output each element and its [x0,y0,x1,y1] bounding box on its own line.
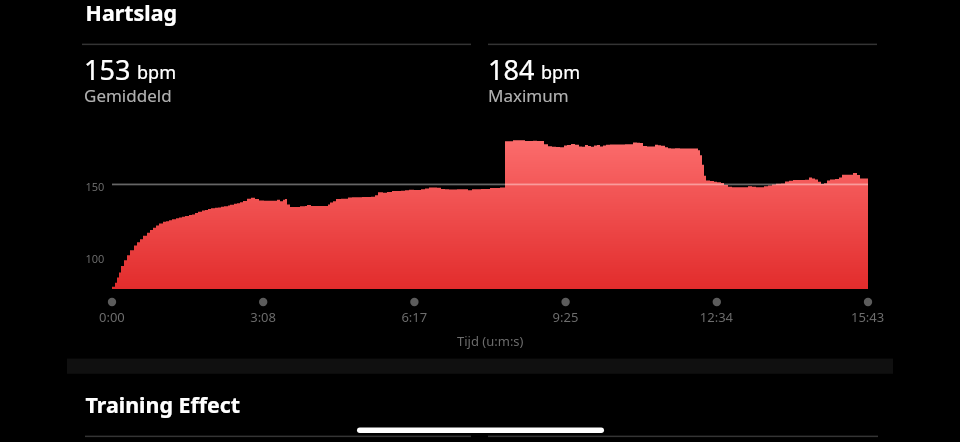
other: Home gesture bar [0,0,960,442]
button[interactable] [0,374,960,442]
button[interactable] [0,0,960,358]
